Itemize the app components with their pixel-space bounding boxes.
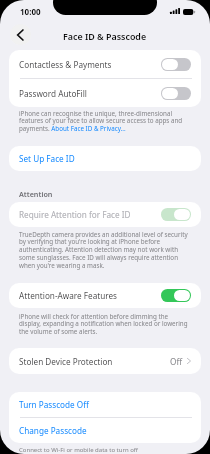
staticText: iPhone will check for attention before d… [19, 312, 188, 336]
staticText: Password AutoFill [19, 88, 87, 99]
staticText: Attention [19, 189, 53, 199]
staticText: TrueDepth camera provides an additional … [19, 230, 188, 270]
button[interactable]: Require Attention for Face ID [9, 202, 201, 227]
staticText: Turn Passcode Off [19, 399, 89, 410]
staticText: Contactless & Payments [19, 59, 112, 70]
button[interactable]: Change Passcode [9, 418, 201, 443]
staticText: Attention-Aware Features [19, 290, 117, 301]
button[interactable]: Set Up Face ID [9, 146, 201, 171]
staticText: Change Passcode [19, 425, 87, 436]
button[interactable]: Turn Passcode Off [9, 392, 201, 417]
button[interactable]: Attention-Aware Features [9, 283, 201, 308]
staticText: Set Up Face ID [19, 153, 75, 164]
staticText: 10:00 [20, 6, 41, 17]
staticText: Off [170, 356, 183, 367]
button[interactable]: Contactless & Payments [9, 50, 201, 78]
staticText: Face ID & Passcode [63, 30, 147, 42]
staticText: Require Attention for Face ID [19, 209, 131, 220]
button[interactable]: Back [10, 24, 31, 45]
staticText: Connect to Wi-Fi or mobile data to turn … [19, 446, 138, 454]
staticText: iPhone can recognise the unique, three-d… [19, 109, 188, 133]
button[interactable]: Stolen Device Protection [9, 348, 201, 374]
button[interactable]: Password AutoFill [9, 79, 201, 107]
staticText: Stolen Device Protection [19, 356, 113, 367]
